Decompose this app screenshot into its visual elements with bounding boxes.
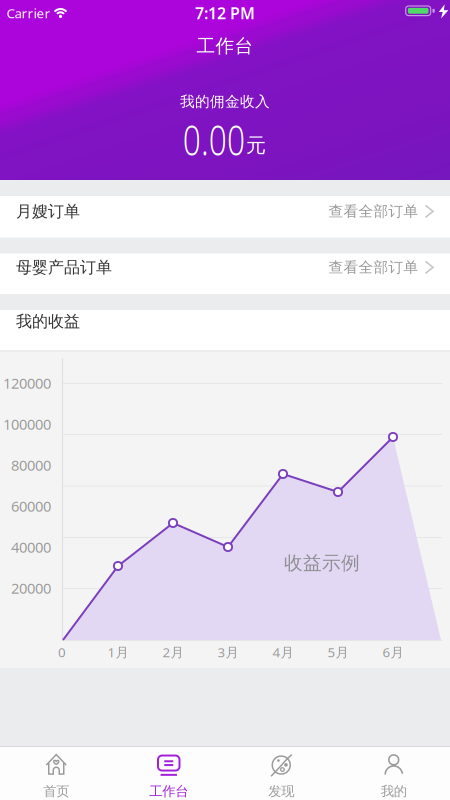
staticText: 首页 [43,783,69,799]
button[interactable]: 首页 [0,750,112,800]
button[interactable]: 工作台 [113,750,225,800]
staticText: 元 [246,133,266,158]
staticText: 母婴产品订单 [16,257,112,277]
staticText: 5月 [327,643,348,661]
staticText: 120000 [3,373,51,393]
staticText: 2月 [162,643,183,661]
staticText: 60000 [11,496,51,516]
button[interactable]: 发现 [225,750,337,800]
staticText: 我的收益 [16,312,80,331]
staticText: 查看全部订单 [328,202,418,220]
button[interactable]: 我的 [338,750,450,800]
staticText: 我的佣金收入 [180,92,270,110]
staticText: 3月 [217,643,238,661]
staticText: 查看全部订单 [328,258,418,276]
staticText: 4月 [272,643,293,661]
staticText: 我的 [381,783,407,799]
staticText: 发现 [268,783,294,799]
staticText: 100000 [3,414,51,434]
staticText: 6月 [382,643,403,661]
staticText: 工作台 [196,34,253,57]
staticText: 收益示例 [284,551,360,574]
staticText: 0.00 [173,112,255,167]
staticText: Carrier [6,4,50,22]
staticText: 40000 [11,537,51,557]
staticText: 80000 [11,455,51,475]
staticText: 20000 [11,578,51,598]
staticText: 工作台 [149,783,188,799]
staticText: 1月 [107,643,128,661]
staticText: 7:12 PM [195,2,255,24]
staticText: 0 [58,643,66,661]
button[interactable]: 月嫂订单 [0,196,450,237]
staticText: 月嫂订单 [16,201,80,221]
button[interactable]: 母婴产品订单 [0,253,450,294]
